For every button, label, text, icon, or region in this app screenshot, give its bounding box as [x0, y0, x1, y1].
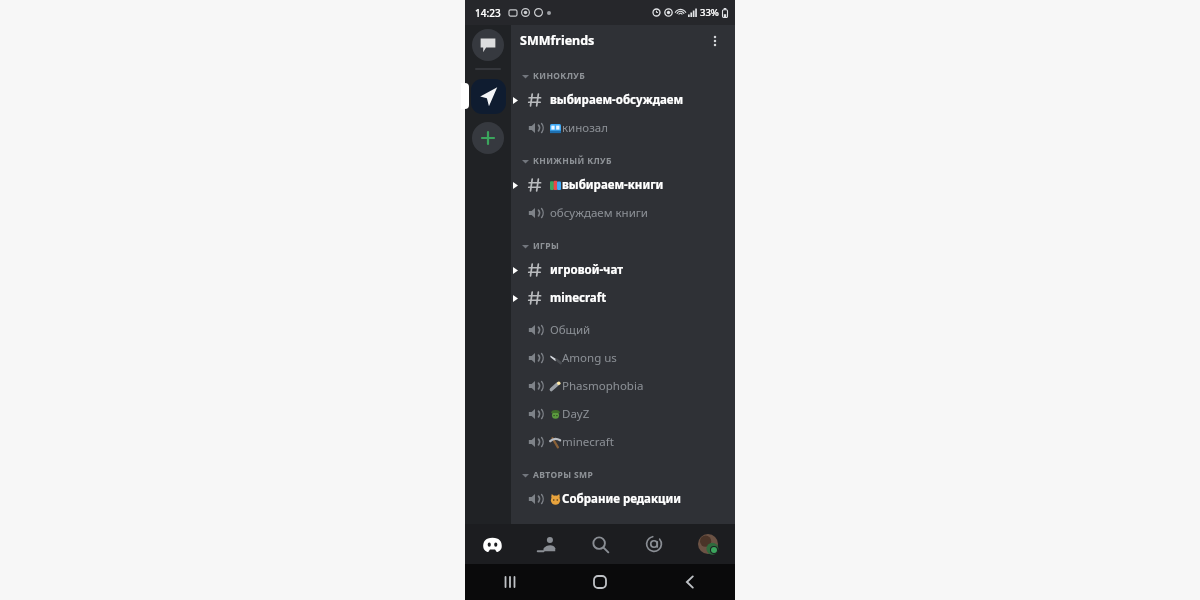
button[interactable]: обсуждаем книги	[511, 199, 735, 227]
button[interactable]: КИНОКЛУБ	[511, 66, 735, 86]
staticText: 33%	[700, 6, 719, 19]
button[interactable]: Open members drawer	[707, 29, 733, 55]
button[interactable]: Add a server	[472, 122, 504, 154]
button[interactable]: SMMfriends	[520, 32, 595, 49]
button[interactable]: игровой-чат	[511, 256, 735, 284]
button[interactable]: выбираем-книги	[511, 171, 735, 199]
staticText: КНИЖНЫЙ КЛУБ	[533, 155, 612, 167]
staticText: выбираем-книги	[562, 177, 664, 193]
button[interactable]: Among us	[511, 344, 735, 372]
button[interactable]: Общий	[511, 316, 735, 344]
button[interactable]: АВТОРЫ SMP	[511, 465, 735, 485]
staticText: АВТОРЫ SMP	[533, 469, 594, 481]
staticText: КИНОКЛУБ	[533, 70, 586, 82]
button[interactable]: You	[681, 524, 735, 564]
button[interactable]: minecraft	[511, 284, 735, 312]
button[interactable]: Servers	[465, 524, 519, 564]
button[interactable]: Собрание редакции	[511, 485, 735, 513]
staticText: minecraft	[550, 290, 607, 306]
button[interactable]: Direct messages	[472, 29, 504, 61]
button[interactable]: Recent apps	[465, 564, 555, 600]
button[interactable]: кинозал	[511, 114, 735, 142]
button[interactable]: Back	[645, 564, 735, 600]
button[interactable]: Home	[555, 564, 645, 600]
button[interactable]: КНИЖНЫЙ КЛУБ	[511, 151, 735, 171]
button[interactable]: minecraft	[511, 428, 735, 456]
staticText: ИГРЫ	[533, 240, 560, 252]
staticText: игровой-чат	[550, 262, 623, 278]
staticText: Among us	[562, 350, 617, 366]
staticText: DayZ	[562, 406, 590, 422]
staticText: кинозал	[562, 120, 608, 136]
staticText: 14:23	[475, 6, 501, 20]
button[interactable]: выбираем-обсуждаем	[511, 86, 735, 114]
button[interactable]: Friends	[519, 524, 573, 564]
button[interactable]: Mentions	[627, 524, 681, 564]
staticText: выбираем-обсуждаем	[550, 92, 684, 108]
button[interactable]: Phasmophobia	[511, 372, 735, 400]
button[interactable]: DayZ	[511, 400, 735, 428]
staticText: Общий	[550, 322, 591, 338]
button[interactable]: ИГРЫ	[511, 236, 735, 256]
staticText: Собрание редакции	[562, 491, 682, 507]
button[interactable]: SMMfriends server	[471, 79, 506, 114]
staticText: minecraft	[562, 434, 614, 450]
button[interactable]: More options	[704, 30, 726, 52]
button[interactable]: Search	[573, 524, 627, 564]
staticText: Phasmophobia	[562, 378, 644, 394]
staticText: обсуждаем книги	[550, 205, 648, 221]
